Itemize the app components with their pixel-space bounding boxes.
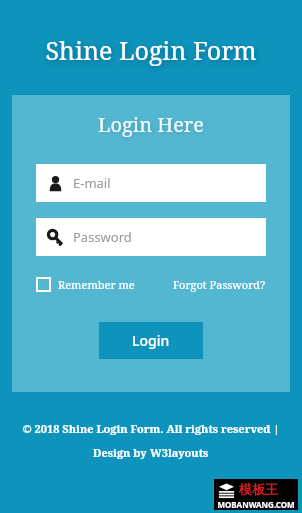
staticText: MOBANWANG.COM xyxy=(217,499,295,510)
staticText: © 2018 Shine Login Form. All rights rese… xyxy=(22,421,280,436)
button[interactable]: W3layouts xyxy=(150,445,209,460)
button[interactable]: E-mail xyxy=(36,164,266,202)
staticText: E-mail xyxy=(73,174,111,192)
button[interactable]: Remember me xyxy=(36,274,135,295)
button[interactable]: Password xyxy=(36,218,266,256)
staticText: Design by xyxy=(93,445,150,460)
staticText: Shine Login Form xyxy=(45,33,257,67)
staticText: 模板王 xyxy=(239,481,278,497)
button[interactable]: Login xyxy=(99,322,203,359)
staticText: Password xyxy=(73,228,132,246)
button[interactable]: Forgot Password? xyxy=(173,274,266,295)
other: Mobanwang watermark xyxy=(214,479,298,510)
staticText: Login xyxy=(132,331,170,350)
staticText: W3layouts xyxy=(150,445,209,460)
staticText: Remember me xyxy=(58,277,135,292)
staticText: Forgot Password? xyxy=(173,277,266,292)
staticText: Login Here xyxy=(98,111,204,138)
